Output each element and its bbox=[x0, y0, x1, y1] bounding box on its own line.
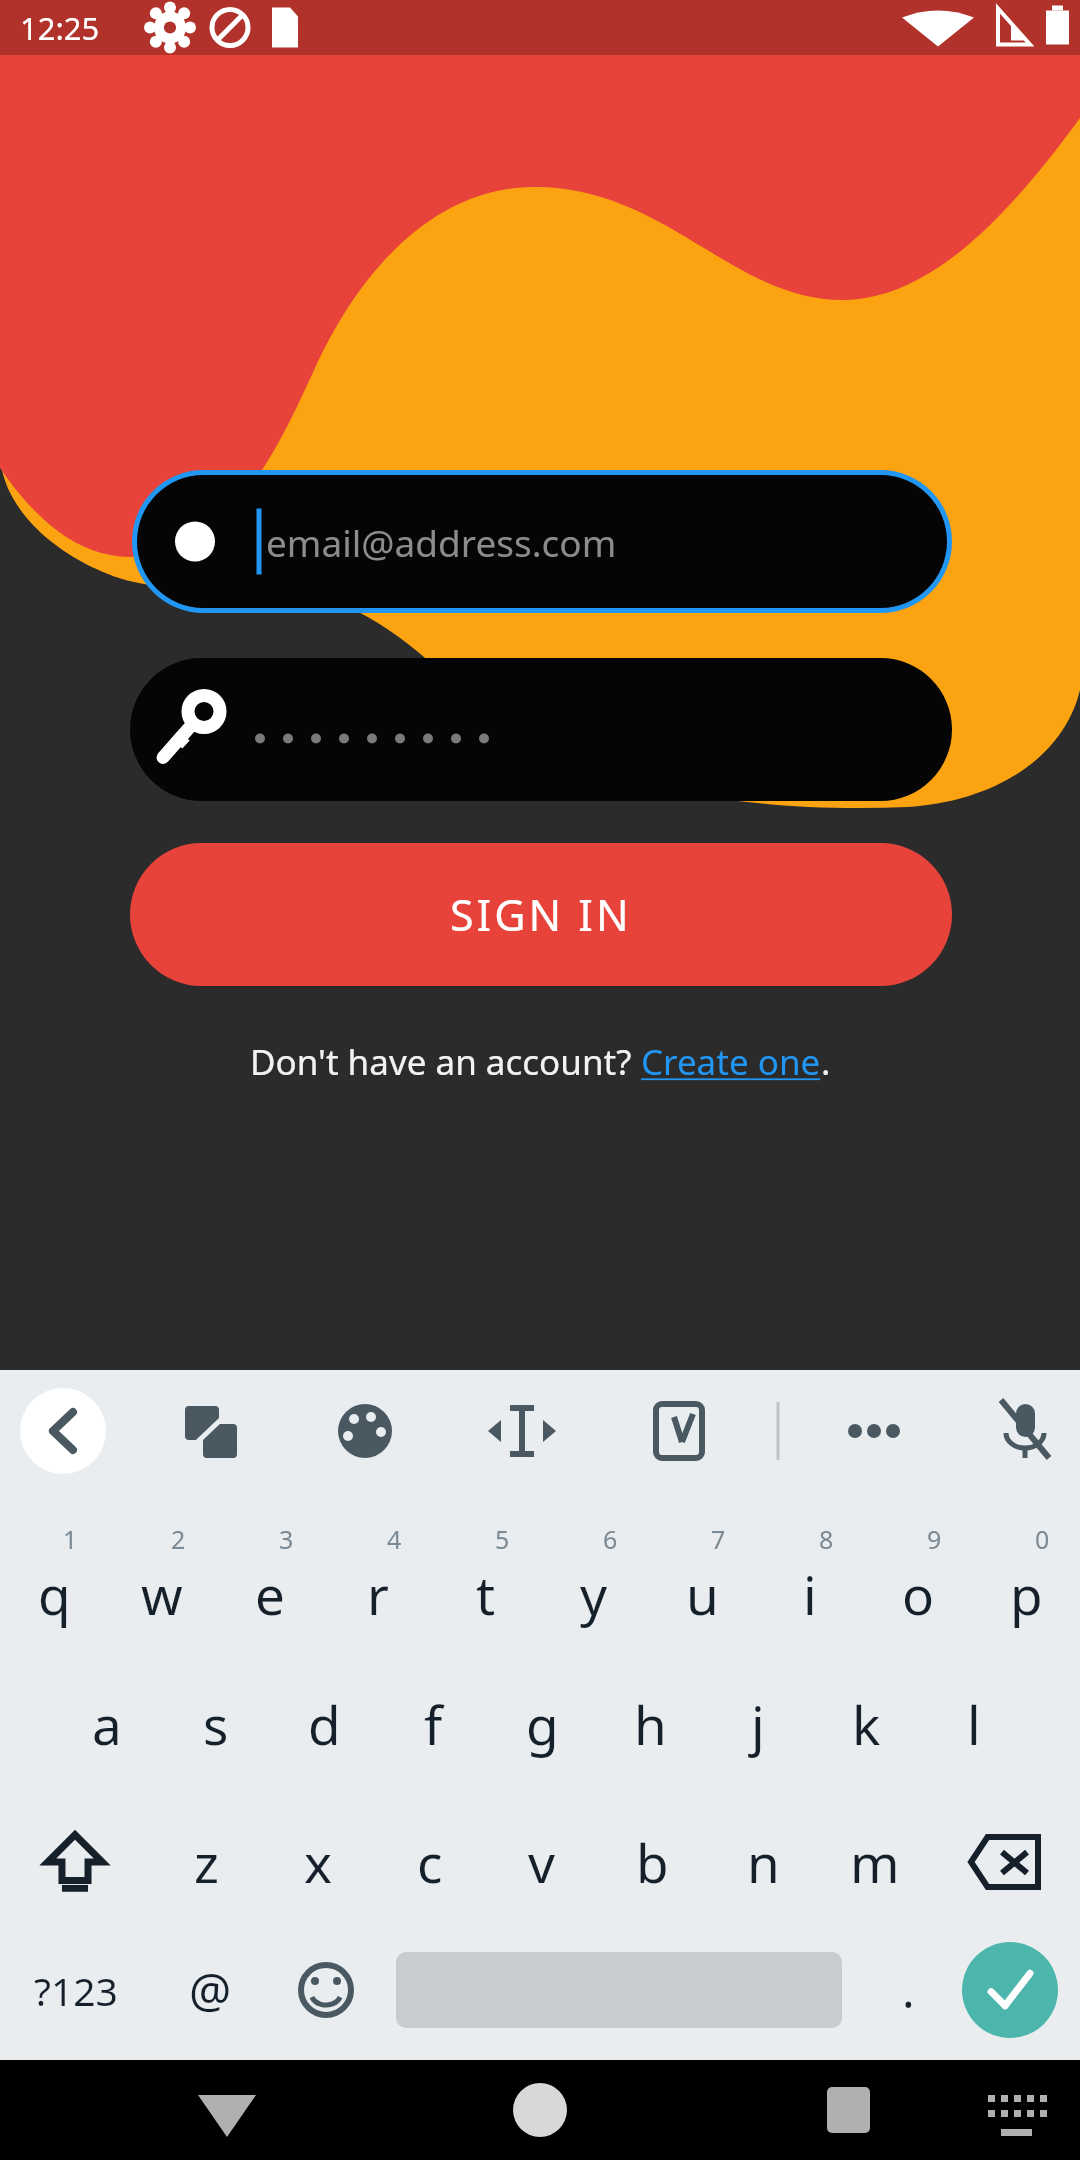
button[interactable]: a bbox=[52, 1656, 161, 1791]
button[interactable]: @ bbox=[152, 1926, 268, 2054]
staticText: a bbox=[92, 1688, 122, 1760]
button[interactable]: Done bbox=[962, 1942, 1058, 2038]
button[interactable]: s bbox=[161, 1656, 270, 1791]
button[interactable]: 5 bbox=[432, 1518, 540, 1653]
staticText: e bbox=[255, 1558, 285, 1630]
staticText: h bbox=[634, 1688, 667, 1760]
staticText: j bbox=[751, 1688, 765, 1760]
button[interactable]: 1 bbox=[0, 1518, 108, 1653]
staticText: . bbox=[902, 1958, 915, 2022]
staticText: z bbox=[194, 1826, 219, 1898]
button[interactable]: l bbox=[920, 1656, 1028, 1791]
button[interactable]: 7 bbox=[648, 1518, 756, 1653]
button[interactable]: 6 bbox=[540, 1518, 648, 1653]
button[interactable]: g bbox=[488, 1656, 596, 1791]
button[interactable] bbox=[130, 658, 952, 801]
staticText: SIGN IN bbox=[450, 885, 632, 944]
staticText: 8 bbox=[819, 1522, 834, 1556]
staticText: x bbox=[304, 1826, 333, 1898]
staticText: ?123 bbox=[34, 1964, 118, 2017]
staticText: c bbox=[417, 1826, 443, 1898]
staticText: u bbox=[686, 1558, 719, 1630]
staticText: 12:25 bbox=[20, 7, 100, 49]
button[interactable]: b bbox=[597, 1794, 708, 1929]
button[interactable]: x bbox=[262, 1794, 374, 1929]
staticText: 4 bbox=[387, 1522, 402, 1556]
button[interactable]: j bbox=[704, 1656, 812, 1791]
button[interactable]: 4 bbox=[324, 1518, 432, 1653]
button[interactable]: Back bbox=[20, 1388, 106, 1474]
button[interactable]: ?123 bbox=[0, 1926, 152, 2054]
staticText: o bbox=[902, 1558, 935, 1630]
button[interactable]: n bbox=[708, 1794, 819, 1929]
staticText: n bbox=[747, 1826, 780, 1898]
staticText: f bbox=[424, 1688, 443, 1760]
staticText: i bbox=[803, 1558, 817, 1630]
staticText: l bbox=[967, 1688, 981, 1760]
staticText: 5 bbox=[495, 1522, 510, 1556]
staticText: @ bbox=[189, 1958, 232, 2022]
button[interactable]: z bbox=[150, 1794, 262, 1929]
button[interactable]: 0 bbox=[972, 1518, 1080, 1653]
button[interactable]: c bbox=[374, 1794, 486, 1929]
staticText: 0 bbox=[1035, 1522, 1050, 1556]
staticText: t bbox=[476, 1558, 496, 1630]
staticText: k bbox=[852, 1688, 881, 1760]
button[interactable]: Emoji bbox=[268, 1926, 384, 2054]
button[interactable]: f bbox=[379, 1656, 488, 1791]
staticText: w bbox=[141, 1558, 183, 1630]
staticText: Create one bbox=[641, 1038, 821, 1086]
staticText: 6 bbox=[603, 1522, 618, 1556]
button[interactable]: Space bbox=[396, 1926, 842, 2054]
button[interactable]: . bbox=[854, 1926, 962, 2054]
staticText: 9 bbox=[927, 1522, 942, 1556]
button[interactable]: SIGN IN bbox=[130, 843, 952, 986]
button[interactable]: d bbox=[270, 1656, 379, 1791]
button[interactable]: h bbox=[596, 1656, 704, 1791]
staticText: d bbox=[308, 1688, 341, 1760]
staticText: p bbox=[1010, 1558, 1043, 1630]
staticText: q bbox=[38, 1558, 71, 1630]
staticText: b bbox=[636, 1826, 669, 1898]
button[interactable]: 3 bbox=[216, 1518, 324, 1653]
button[interactable]: 2 bbox=[108, 1518, 216, 1653]
staticText: Don't have an account? bbox=[250, 1038, 641, 1086]
button[interactable]: 8 bbox=[756, 1518, 864, 1653]
button[interactable]: Shift bbox=[0, 1794, 150, 1929]
button[interactable]: 9 bbox=[864, 1518, 972, 1653]
button[interactable]: k bbox=[812, 1656, 920, 1791]
button[interactable]: v bbox=[486, 1794, 597, 1929]
staticText: 7 bbox=[711, 1522, 726, 1556]
staticText: s bbox=[203, 1688, 229, 1760]
staticText: v bbox=[528, 1826, 555, 1898]
button[interactable]: email@address.com bbox=[137, 475, 947, 608]
button[interactable]: Backspace bbox=[930, 1794, 1080, 1929]
staticText: . bbox=[821, 1038, 831, 1086]
staticText: email@address.com bbox=[266, 517, 617, 567]
staticText: 1 bbox=[63, 1522, 78, 1556]
button[interactable]: Create one bbox=[641, 1038, 821, 1086]
button[interactable]: m bbox=[819, 1794, 930, 1929]
staticText: y bbox=[580, 1558, 608, 1630]
staticText: 3 bbox=[279, 1522, 294, 1556]
staticText: 2 bbox=[171, 1522, 186, 1556]
staticText: g bbox=[526, 1688, 559, 1760]
staticText: r bbox=[367, 1558, 389, 1630]
staticText: m bbox=[850, 1826, 900, 1898]
